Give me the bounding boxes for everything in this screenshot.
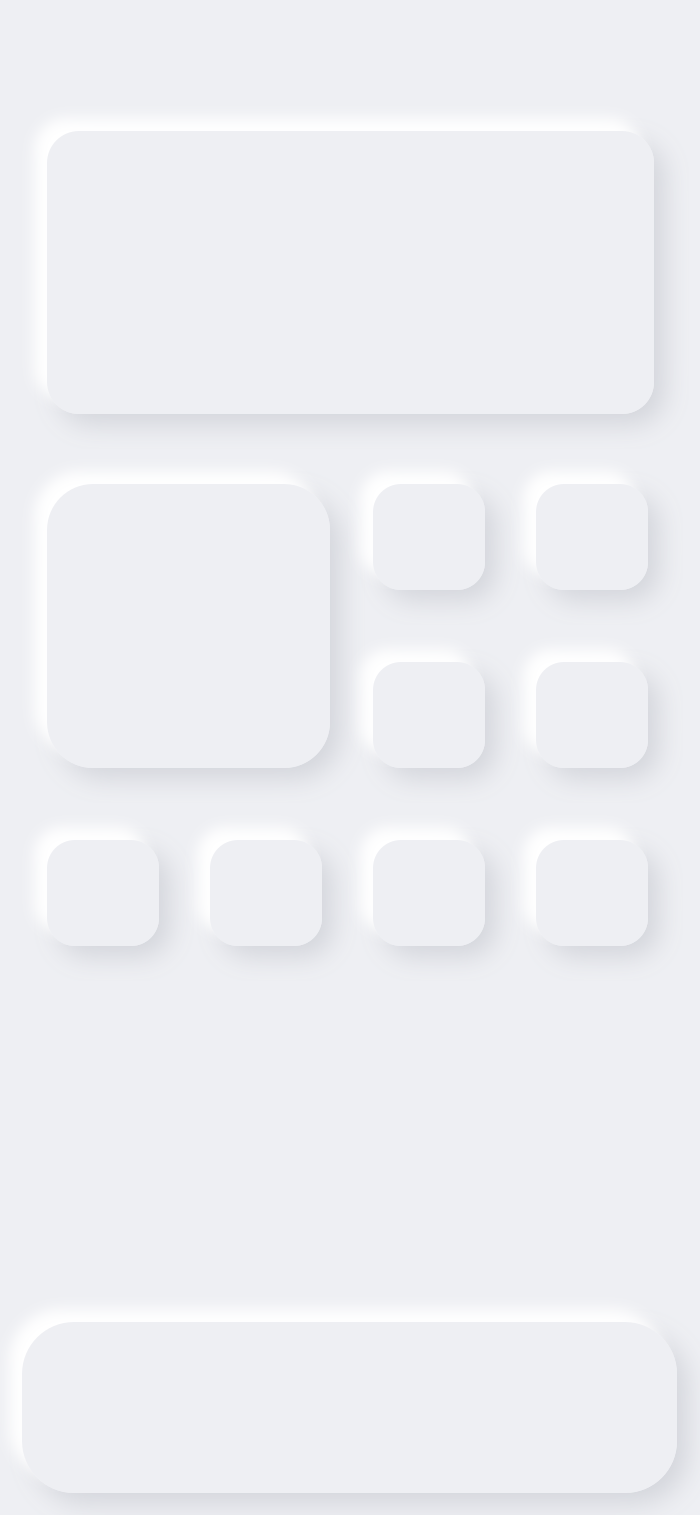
button[interactable]: Tile 8 xyxy=(536,840,648,946)
button[interactable]: Tile 2 xyxy=(536,484,648,590)
button[interactable]: Tile 3 xyxy=(373,662,485,768)
button[interactable]: Tile 1 xyxy=(373,484,485,590)
button[interactable]: Tile 6 xyxy=(210,840,322,946)
button[interactable]: Tile 5 xyxy=(47,840,159,946)
button[interactable]: Tile 4 xyxy=(536,662,648,768)
button[interactable]: Tile 7 xyxy=(373,840,485,946)
